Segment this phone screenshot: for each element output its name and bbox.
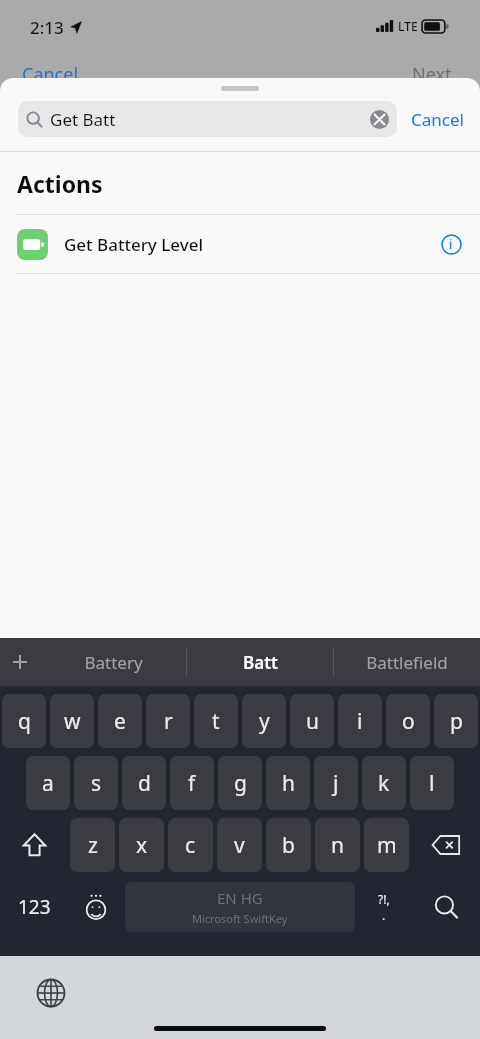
button[interactable]: r	[146, 694, 190, 748]
staticText: q	[18, 707, 31, 736]
button[interactable]: Batt	[187, 638, 333, 686]
button[interactable]: m	[364, 818, 409, 872]
button[interactable]: b	[266, 818, 311, 872]
button[interactable]: x	[119, 818, 164, 872]
button[interactable]: 123	[2, 880, 67, 934]
button[interactable]: e	[98, 694, 142, 748]
staticText: c	[185, 831, 196, 860]
button[interactable]: l	[410, 756, 454, 810]
button[interactable]: EN HG	[125, 882, 355, 932]
staticText: j	[333, 769, 339, 798]
staticText: i	[449, 236, 453, 252]
staticText: m	[377, 831, 397, 860]
button[interactable]: Add	[0, 638, 40, 686]
staticText: Actions	[17, 168, 103, 199]
button[interactable]: Emoji	[71, 880, 121, 934]
button[interactable]: Clear text	[370, 110, 389, 129]
button[interactable]: v	[217, 818, 262, 872]
staticText: s	[91, 769, 102, 798]
button[interactable]: Battery	[40, 638, 186, 686]
button[interactable]: Shift	[2, 818, 66, 872]
staticText: z	[88, 831, 98, 860]
button[interactable]: q	[2, 694, 46, 748]
button[interactable]: h	[266, 756, 310, 810]
button[interactable]: o	[386, 694, 430, 748]
staticText: o	[402, 707, 415, 736]
button[interactable]: Backspace	[413, 818, 478, 872]
staticText: ?!,	[378, 891, 390, 907]
staticText: r	[164, 707, 173, 736]
staticText: Microsoft SwiftKey	[192, 911, 288, 926]
button[interactable]: Change language	[28, 970, 74, 1016]
staticText: EN HG	[217, 888, 263, 908]
button[interactable]: u	[290, 694, 334, 748]
staticText: p	[450, 707, 463, 736]
button[interactable]: j	[314, 756, 358, 810]
staticText: d	[138, 769, 151, 798]
staticText: y	[259, 707, 270, 736]
staticText: e	[114, 707, 126, 736]
staticText: u	[306, 707, 319, 736]
button[interactable]: i	[338, 694, 382, 748]
button[interactable]: Get Batt	[18, 101, 397, 137]
staticText: Get Battery Level	[64, 233, 204, 256]
staticText: Next	[412, 62, 452, 87]
staticText: n	[331, 831, 344, 860]
button[interactable]: p	[434, 694, 478, 748]
button[interactable]: Search	[413, 880, 478, 934]
button[interactable]: f	[170, 756, 214, 810]
button[interactable]: Cancel	[409, 102, 466, 137]
button[interactable]: t	[194, 694, 238, 748]
staticText: k	[378, 769, 390, 798]
staticText: 123	[18, 894, 51, 920]
staticText: Get Batt	[50, 108, 116, 131]
staticText: Batt	[243, 651, 278, 674]
staticText: x	[136, 831, 148, 860]
staticText: g	[234, 769, 247, 798]
staticText: 2:13	[30, 16, 64, 39]
button[interactable]: k	[362, 756, 406, 810]
button[interactable]: d	[122, 756, 166, 810]
staticText: LTE	[398, 18, 418, 34]
staticText: a	[42, 769, 54, 798]
button[interactable]: ?!,	[359, 880, 409, 934]
staticText: t	[212, 707, 220, 736]
button[interactable]: g	[218, 756, 262, 810]
button[interactable]: n	[315, 818, 360, 872]
staticText: l	[429, 769, 435, 798]
staticText: Cancel	[411, 108, 464, 131]
staticText: Cancel	[22, 62, 79, 87]
button[interactable]: z	[70, 818, 115, 872]
staticText: f	[188, 769, 196, 798]
staticText: w	[64, 707, 81, 736]
button[interactable]: Get Battery Level	[0, 215, 480, 273]
staticText: Battlefield	[366, 651, 448, 674]
button[interactable]: y	[242, 694, 286, 748]
staticText: .	[382, 907, 386, 923]
staticText: v	[234, 831, 245, 860]
staticText: b	[282, 831, 295, 860]
staticText: h	[282, 769, 295, 798]
button[interactable]: c	[168, 818, 213, 872]
button[interactable]: s	[74, 756, 118, 810]
button[interactable]: More info	[439, 232, 463, 256]
button[interactable]: a	[26, 756, 70, 810]
button[interactable]: w	[50, 694, 94, 748]
button[interactable]: Battlefield	[334, 638, 480, 686]
staticText: i	[357, 707, 363, 736]
staticText: Battery	[84, 651, 143, 674]
